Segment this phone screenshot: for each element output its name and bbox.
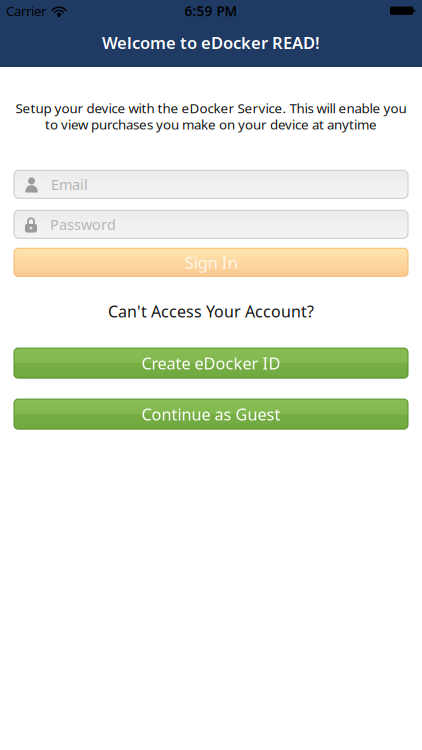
staticText: Sign In bbox=[184, 251, 237, 274]
button[interactable]: Create eDocker ID bbox=[14, 348, 408, 378]
staticText: Email bbox=[51, 174, 88, 194]
staticText: Carrier bbox=[6, 2, 46, 20]
button[interactable]: Password bbox=[14, 210, 408, 238]
button[interactable]: Continue as Guest bbox=[14, 399, 408, 429]
staticText: Continue as Guest bbox=[141, 403, 280, 425]
staticText: Setup your device with the eDocker Servi… bbox=[15, 99, 406, 117]
staticText: Password bbox=[50, 214, 116, 234]
staticText: Create eDocker ID bbox=[141, 352, 280, 374]
button[interactable]: Email bbox=[14, 170, 408, 198]
staticText: 6:59 PM bbox=[184, 2, 237, 20]
staticText: Welcome to eDocker READ! bbox=[102, 31, 320, 54]
button[interactable]: Sign In bbox=[14, 248, 408, 276]
staticText: to view purchases you make on your devic… bbox=[45, 115, 377, 133]
staticText: Can't Access Your Account? bbox=[108, 300, 314, 322]
